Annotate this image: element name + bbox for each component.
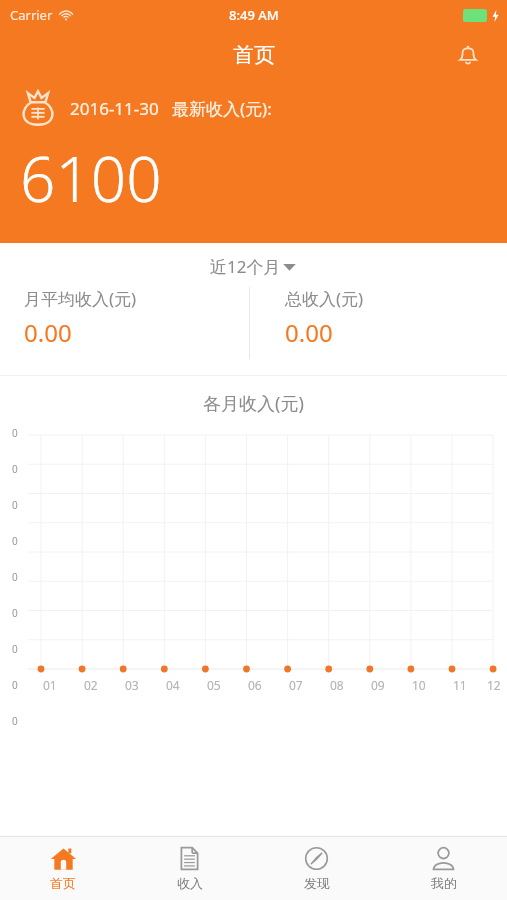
staticText: 我的 xyxy=(431,875,457,891)
staticText: 首页 xyxy=(50,875,76,891)
staticText: 各月收入(元) xyxy=(203,391,304,416)
staticText: 近12个月 xyxy=(210,255,281,278)
staticText: Carrier xyxy=(10,6,53,24)
staticText: 0 xyxy=(12,678,18,692)
staticText: 0 xyxy=(12,534,18,548)
staticText: 0 xyxy=(12,642,18,656)
staticText: 8:49 AM xyxy=(229,6,279,24)
staticText: 02 xyxy=(84,677,98,693)
button[interactable]: 首页 xyxy=(0,836,126,900)
staticText: 03 xyxy=(125,677,139,693)
staticText: 09 xyxy=(371,677,385,693)
staticText: 10 xyxy=(412,677,426,693)
staticText: 2016-11-30 最新收入(元): xyxy=(70,97,272,120)
staticText: 月平均收入(元) xyxy=(24,287,137,310)
staticText: 06 xyxy=(248,677,262,693)
staticText: 收入 xyxy=(177,875,203,891)
staticText: 12 xyxy=(487,677,501,693)
staticText: 0 xyxy=(12,426,18,440)
button[interactable]: 近12个月 xyxy=(210,255,297,278)
staticText: 6100 xyxy=(20,136,162,220)
staticText: 01 xyxy=(43,677,57,693)
staticText: 0 xyxy=(12,714,18,728)
staticText: 07 xyxy=(289,677,303,693)
staticText: 0 xyxy=(12,570,18,584)
staticText: 04 xyxy=(166,677,180,693)
staticText: 总收入(元) xyxy=(285,287,364,310)
button[interactable]: 我的 xyxy=(380,836,507,900)
staticText: 首页 xyxy=(233,42,275,68)
staticText: 0 xyxy=(12,498,18,512)
staticText: 05 xyxy=(207,677,221,693)
button[interactable]: 收入 xyxy=(126,836,253,900)
staticText: 11 xyxy=(453,677,467,693)
button[interactable]: Notifications xyxy=(451,38,485,72)
staticText: 发现 xyxy=(304,875,330,891)
staticText: 08 xyxy=(330,677,344,693)
staticText: 0.00 xyxy=(285,316,333,349)
staticText: 0 xyxy=(12,606,18,620)
button[interactable]: 发现 xyxy=(253,836,380,900)
staticText: 0 xyxy=(12,462,18,476)
staticText: 0.00 xyxy=(24,316,72,349)
